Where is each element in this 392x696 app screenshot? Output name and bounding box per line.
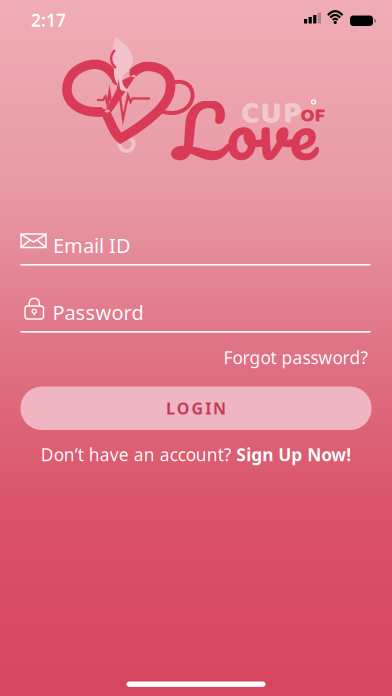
staticText: O (177, 398, 190, 419)
staticText: C (241, 88, 259, 139)
staticText: Don’t have an account? (41, 443, 232, 466)
staticText: Sign Up Now! (236, 443, 351, 466)
staticText: 2:17 (31, 8, 66, 31)
staticText: OF (300, 100, 325, 132)
button[interactable]: L (20, 386, 371, 430)
button[interactable]: Password (0, 0, 350, 27)
button[interactable]: Email ID (0, 0, 350, 27)
button[interactable]: Forgot password? (223, 346, 368, 369)
staticText: G (191, 398, 203, 419)
staticText: N (213, 398, 226, 419)
staticText: L (166, 398, 175, 419)
staticText: Forgot password? (223, 346, 368, 369)
staticText: I (205, 398, 211, 419)
staticText: Email ID (53, 232, 131, 259)
staticText: U (260, 88, 281, 139)
button[interactable]: Sign Up Now! (236, 443, 351, 466)
staticText: Password (52, 299, 143, 326)
staticText: P (283, 88, 302, 139)
staticText: Love (174, 70, 317, 192)
